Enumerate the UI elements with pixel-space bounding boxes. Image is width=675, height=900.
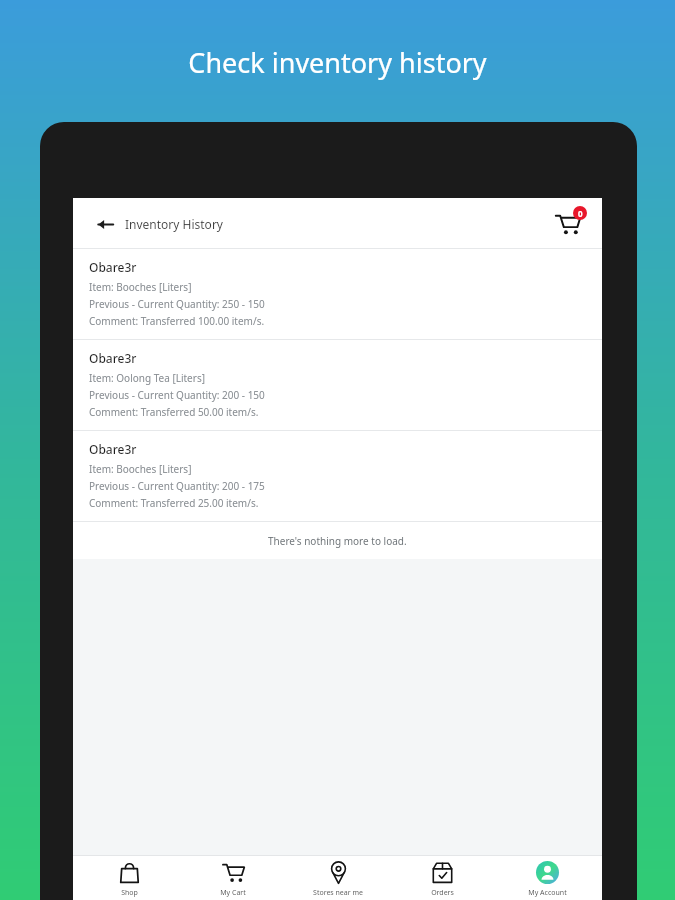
staticText: Obare3r — [89, 441, 137, 457]
button[interactable]: My Account — [498, 856, 596, 900]
staticText: Previous - Current Quantity: 200 - 175 — [89, 479, 265, 493]
staticText: 0 — [578, 208, 583, 219]
staticText: Comment: Transferred 25.00 item/s. — [89, 496, 259, 510]
button[interactable]: Obare3r — [73, 431, 602, 521]
staticText: Comment: Transferred 100.00 item/s. — [89, 314, 265, 328]
staticText: My Account — [528, 888, 567, 898]
button[interactable]: Obare3r — [73, 340, 602, 430]
staticText: My Cart — [220, 888, 246, 898]
button[interactable]: Shop — [80, 856, 178, 900]
staticText: Item: Oolong Tea [Liters] — [89, 371, 205, 385]
staticText: Item: Booches [Liters] — [89, 462, 192, 476]
staticText: Previous - Current Quantity: 200 - 150 — [89, 388, 265, 402]
staticText: Orders — [431, 888, 454, 898]
staticText: There's nothing more to load. — [268, 534, 407, 548]
button[interactable]: Back — [89, 208, 121, 240]
staticText: Stores near me — [313, 888, 363, 898]
button[interactable]: My Cart — [184, 856, 282, 900]
button[interactable]: Cart — [548, 204, 588, 244]
staticText: Obare3r — [89, 259, 137, 275]
button[interactable]: Stores near me — [289, 856, 387, 900]
staticText: Item: Booches [Liters] — [89, 280, 192, 294]
staticText: Comment: Transferred 50.00 item/s. — [89, 405, 259, 419]
staticText: Obare3r — [89, 350, 137, 366]
button[interactable]: Orders — [393, 856, 491, 900]
button[interactable]: Obare3r — [73, 249, 602, 339]
staticText: Previous - Current Quantity: 250 - 150 — [89, 297, 265, 311]
staticText: Shop — [121, 888, 138, 898]
staticText: Inventory History — [125, 216, 223, 232]
staticText: Check inventory history — [188, 44, 487, 81]
